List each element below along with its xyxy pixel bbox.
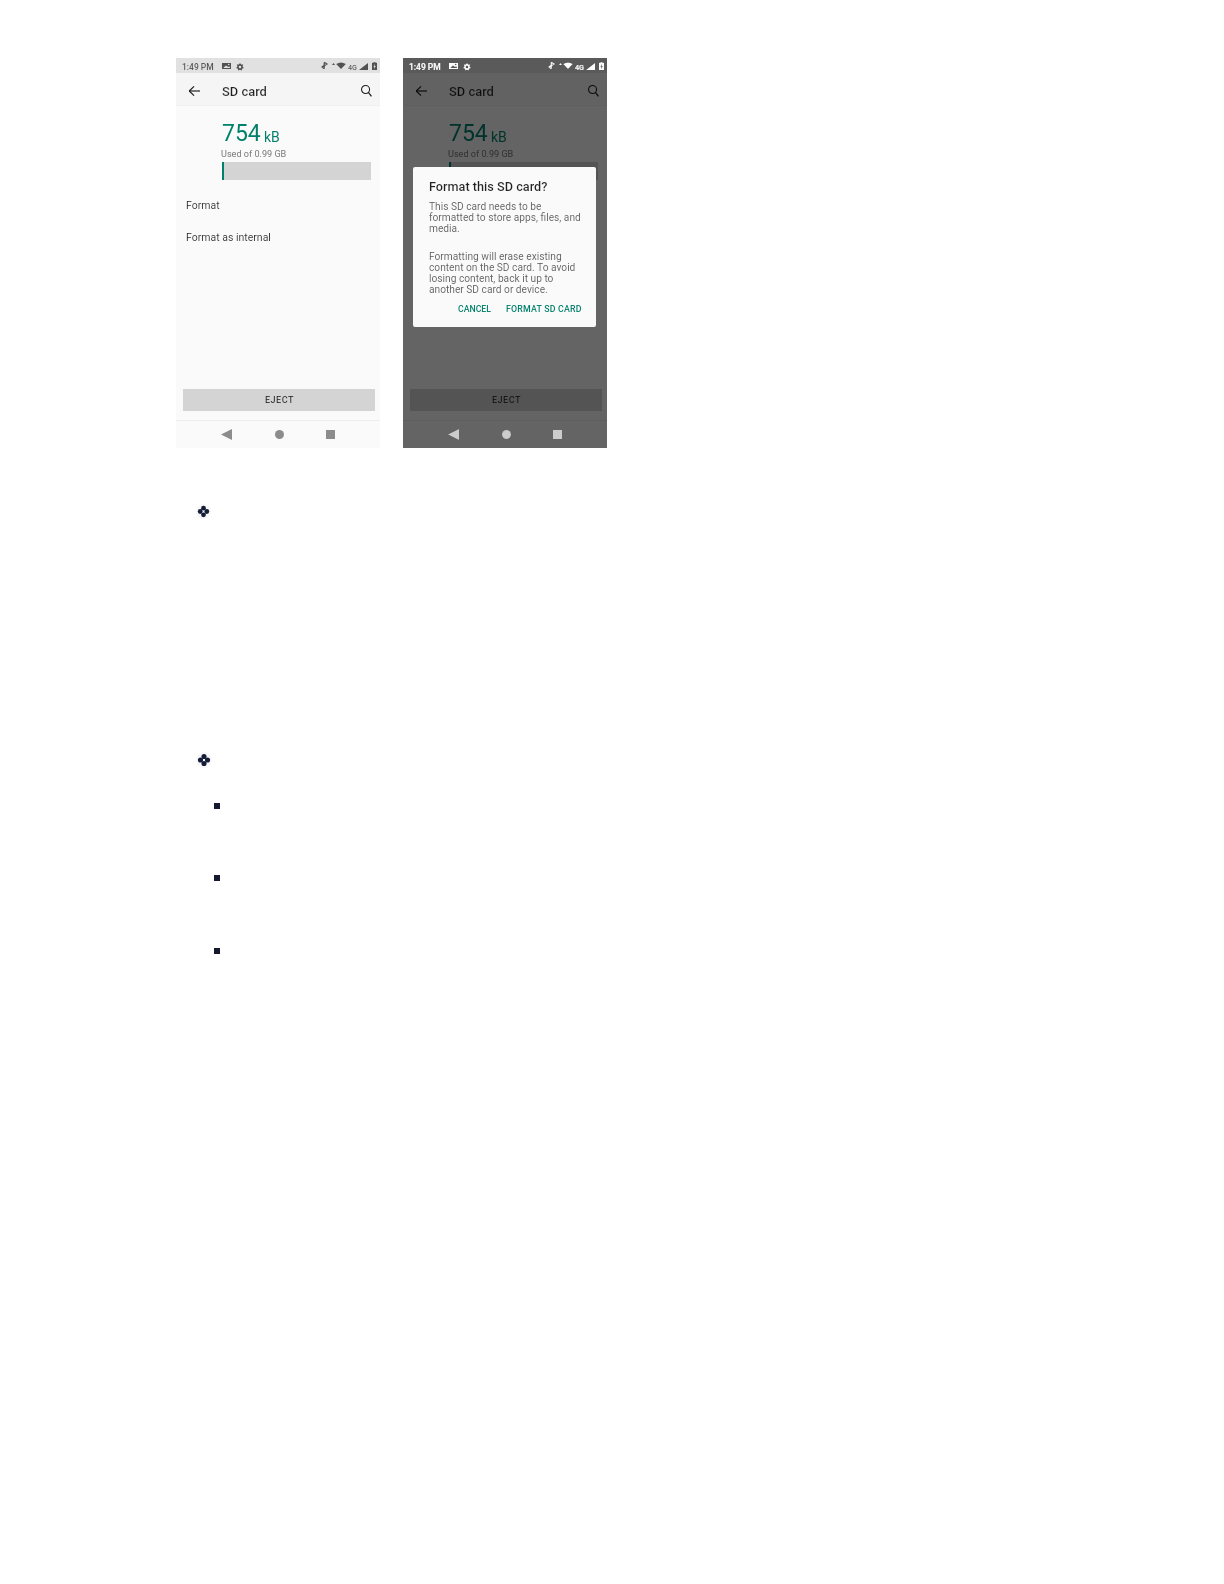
staticText: Formatting will erase existing content o… — [429, 251, 586, 295]
button[interactable]: Format — [403, 189, 607, 221]
button[interactable]: Back — [434, 421, 472, 448]
staticText: Format — [186, 200, 220, 211]
button[interactable]: Format as internal — [403, 221, 607, 253]
staticText: 4G — [575, 64, 584, 72]
button[interactable]: Home — [260, 421, 298, 448]
staticText: 4G — [575, 64, 584, 72]
button[interactable]: Search — [355, 80, 377, 102]
button[interactable]: Search — [582, 80, 604, 102]
staticText: This SD card needs to be formatted to st… — [429, 201, 586, 234]
staticText: kB — [491, 129, 507, 145]
staticText: EJECT — [265, 395, 294, 405]
staticText: 1:49 PM — [182, 63, 214, 72]
button[interactable]: Format — [176, 189, 380, 221]
staticText: 754 — [449, 120, 488, 147]
staticText: 1:49 PM — [409, 63, 441, 72]
staticText: 1:49 PM — [409, 63, 441, 72]
staticText: kB — [264, 129, 280, 145]
staticText: SD card — [222, 85, 267, 99]
staticText: Format — [413, 200, 447, 211]
button[interactable]: Back — [182, 80, 206, 102]
staticText: Format as internal — [186, 232, 271, 243]
button[interactable]: EJECT — [410, 389, 602, 411]
button[interactable]: Recents — [538, 421, 576, 448]
button[interactable]: Home — [487, 421, 525, 448]
button[interactable]: Back — [207, 421, 245, 448]
button[interactable]: Recents — [311, 421, 349, 448]
staticText: EJECT — [492, 395, 521, 405]
button[interactable]: Format as internal — [176, 221, 380, 253]
staticText: FORMAT SD CARD — [506, 304, 582, 314]
button[interactable]: Back — [409, 80, 433, 102]
button[interactable]: Back — [434, 421, 472, 448]
staticText: SD card — [449, 85, 494, 99]
staticText: Used of 0.99 GB — [448, 149, 514, 159]
button[interactable]: Home — [487, 421, 525, 448]
staticText: 754 — [222, 120, 261, 147]
staticText: Used of 0.99 GB — [221, 149, 287, 159]
button[interactable]: FORMAT SD CARD — [501, 300, 587, 318]
staticText: Format this SD card? — [429, 180, 548, 194]
button[interactable]: CANCEL — [452, 300, 497, 318]
button[interactable]: Recents — [538, 421, 576, 448]
button[interactable]: EJECT — [183, 389, 375, 411]
staticText: 4G — [348, 64, 357, 72]
staticText: CANCEL — [458, 304, 491, 314]
